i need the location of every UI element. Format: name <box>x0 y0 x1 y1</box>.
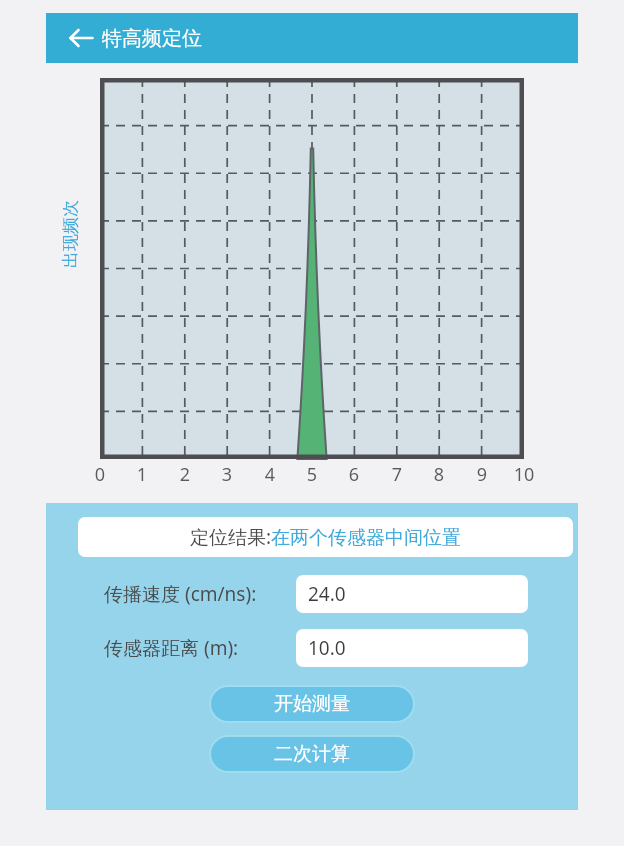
staticText: 6 <box>340 462 368 487</box>
button[interactable]: 二次计算 <box>211 737 413 771</box>
button[interactable]: 24.0 <box>296 575 528 613</box>
button[interactable]: Back <box>60 16 104 60</box>
staticText: 传感器距离 (m): <box>104 635 239 661</box>
button[interactable]: 开始测量 <box>211 687 413 721</box>
staticText: 二次计算 <box>274 742 350 766</box>
staticText: 9 <box>468 462 496 487</box>
staticText: 特高频定位 <box>102 26 202 51</box>
staticText: 7 <box>383 462 411 487</box>
staticText: 5 <box>298 462 326 487</box>
staticText: 定位结果:在两个传感器中间位置 <box>190 524 462 550</box>
staticText: 3 <box>213 462 241 487</box>
staticText: 8 <box>425 462 453 487</box>
button[interactable]: 10.0 <box>296 629 528 667</box>
staticText: 开始测量 <box>274 692 350 716</box>
staticText: 1 <box>128 462 156 487</box>
staticText: 出现频次 <box>60 200 81 268</box>
button[interactable]: 定位结果:在两个传感器中间位置 <box>78 517 573 557</box>
staticText: 传播速度 (cm/ns): <box>104 581 257 607</box>
staticText: 10 <box>510 462 538 487</box>
staticText: 0 <box>86 462 114 487</box>
staticText: 24.0 <box>308 581 346 607</box>
button[interactable]: Back <box>46 13 578 63</box>
staticText: 10.0 <box>308 635 346 661</box>
staticText: 4 <box>256 462 284 487</box>
staticText: 2 <box>171 462 199 487</box>
